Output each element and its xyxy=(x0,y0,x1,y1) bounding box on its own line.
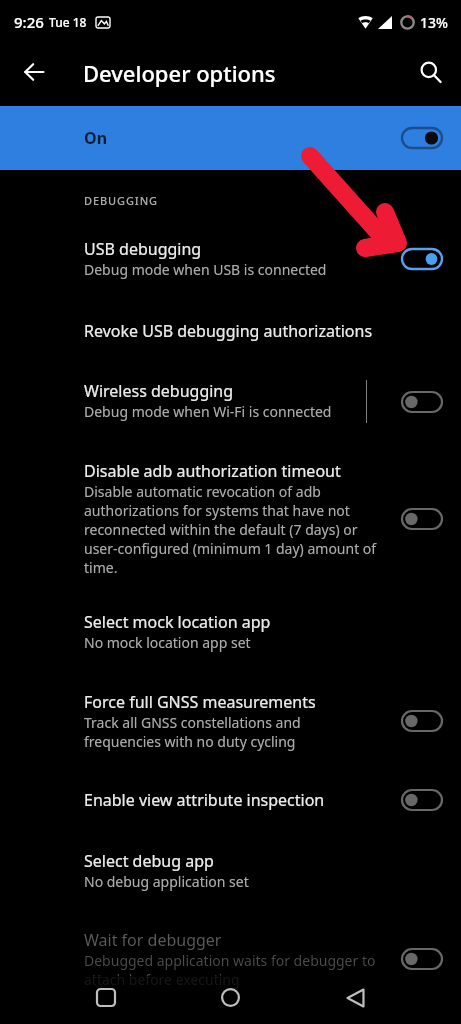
button[interactable]: Toggle off xyxy=(402,711,442,731)
staticText: No debug application set xyxy=(84,872,249,891)
button[interactable]: Revoke USB debugging authorizations xyxy=(0,299,461,362)
staticText: Disable automatic revocation of adb auth… xyxy=(84,482,378,577)
staticText: Select debug app xyxy=(84,850,214,872)
button[interactable]: Toggle off xyxy=(402,392,442,412)
staticText: Debugged application waits for debugger … xyxy=(84,951,378,989)
staticText: 9:26 xyxy=(14,12,44,32)
staticText: Wait for debugger xyxy=(84,929,222,951)
button[interactable]: On xyxy=(0,106,461,170)
staticText: Enable view attribute inspection xyxy=(84,789,325,811)
button[interactable]: Toggle off xyxy=(402,509,442,529)
staticText: On xyxy=(84,127,108,149)
button[interactable]: Disable adb authorization timeout xyxy=(0,443,461,597)
button[interactable]: Select debug app xyxy=(0,831,461,911)
button[interactable]: Wait for debugger xyxy=(0,911,461,1009)
staticText: Wireless debugging xyxy=(84,380,234,402)
button[interactable]: Recent apps xyxy=(87,979,124,1016)
button[interactable]: Back xyxy=(12,50,56,94)
staticText: 13% xyxy=(420,13,448,32)
staticText: Select mock location app xyxy=(84,611,271,633)
staticText: Revoke USB debugging authorizations xyxy=(84,320,373,342)
button[interactable]: Select mock location app xyxy=(0,597,461,672)
staticText: Debug mode when USB is connected xyxy=(84,260,327,279)
button[interactable]: Back xyxy=(337,979,374,1016)
button[interactable]: Enable view attribute inspection xyxy=(0,771,461,831)
staticText: Force full GNSS measurements xyxy=(84,691,316,713)
staticText: No mock location app set xyxy=(84,633,251,652)
button[interactable]: USB debugging xyxy=(0,208,461,299)
staticText: Disable adb authorization timeout xyxy=(84,460,341,482)
staticText: USB debugging xyxy=(84,238,202,260)
button[interactable]: Toggle off xyxy=(402,949,442,969)
button[interactable]: Toggle off xyxy=(402,790,442,810)
staticText: Developer options xyxy=(83,58,276,88)
button[interactable]: Home xyxy=(212,979,249,1016)
button[interactable]: Search xyxy=(409,50,453,94)
staticText: DEBUGGING xyxy=(84,193,461,208)
staticText: Debug mode when Wi-Fi is connected xyxy=(84,402,332,421)
button[interactable]: Toggle on xyxy=(402,249,442,269)
staticText: Track all GNSS constellations and freque… xyxy=(84,713,378,751)
button[interactable]: Force full GNSS measurements xyxy=(0,672,461,771)
button[interactable]: Wireless debugging xyxy=(0,362,461,443)
staticText: Tue 18 xyxy=(49,14,87,30)
